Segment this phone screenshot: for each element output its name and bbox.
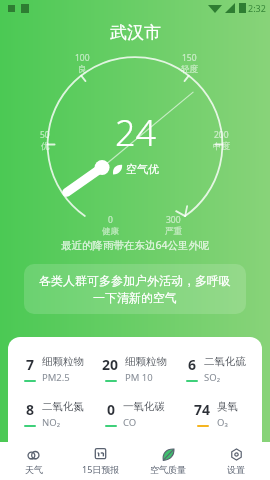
staticText: 50 bbox=[40, 129, 50, 141]
button[interactable]: 6 bbox=[175, 355, 256, 384]
staticText: O₃ bbox=[217, 416, 228, 429]
staticText: 轻度 bbox=[181, 64, 198, 75]
staticText: 2:32 bbox=[248, 2, 266, 14]
staticText: 二氧化氮 bbox=[42, 400, 84, 413]
staticText: 一氧化碳 bbox=[123, 400, 165, 413]
staticText: 各类人群可多参加户外活动，多呼吸一下清新的空气 bbox=[38, 273, 232, 305]
staticText: CO bbox=[123, 416, 137, 429]
staticText: 天气 bbox=[25, 464, 43, 475]
button[interactable]: 设置 bbox=[202, 442, 270, 480]
button[interactable]: 0 bbox=[94, 400, 175, 429]
staticText: 空气优 bbox=[126, 162, 159, 176]
staticText: 健康 bbox=[102, 226, 119, 237]
staticText: 74 bbox=[194, 400, 211, 419]
staticText: 150 bbox=[182, 52, 197, 64]
staticText: 15日预报 bbox=[82, 463, 120, 475]
staticText: 设置 bbox=[227, 464, 245, 475]
staticText: 良 bbox=[78, 64, 87, 75]
staticText: 24 bbox=[115, 108, 157, 157]
staticText: 中度 bbox=[213, 141, 230, 152]
staticText: 7 bbox=[26, 355, 35, 374]
staticText: 300 bbox=[166, 214, 181, 226]
staticText: 最近的降雨带在东边64公里外呢 bbox=[61, 238, 210, 252]
staticText: 8 bbox=[26, 400, 35, 419]
button[interactable]: 74 bbox=[175, 400, 256, 429]
staticText: PM 10 bbox=[125, 371, 153, 384]
button[interactable]: 空气质量 bbox=[134, 442, 202, 480]
button[interactable]: 天气 bbox=[0, 442, 67, 480]
staticText: PM2.5 bbox=[42, 371, 70, 384]
staticText: 细颗粒物 bbox=[42, 355, 84, 368]
button[interactable]: 各类人群可多参加户外活动，多呼吸一下清新的空气 bbox=[24, 264, 246, 314]
staticText: 200 bbox=[214, 129, 229, 141]
staticText: 20 bbox=[102, 355, 119, 374]
staticText: 优 bbox=[41, 141, 50, 152]
staticText: 严重 bbox=[165, 226, 182, 237]
staticText: 二氧化硫 bbox=[204, 355, 246, 368]
staticText: 0 bbox=[107, 400, 116, 419]
button[interactable]: 7 bbox=[14, 355, 94, 384]
staticText: SO₂ bbox=[204, 371, 220, 384]
staticText: NO₂ bbox=[42, 416, 60, 429]
staticText: 0 bbox=[108, 214, 113, 226]
button[interactable]: 8 bbox=[14, 400, 94, 429]
staticText: 6 bbox=[188, 355, 197, 374]
button[interactable]: 15日预报 bbox=[67, 442, 134, 480]
staticText: 100 bbox=[75, 52, 90, 64]
staticText: 空气质量 bbox=[150, 464, 186, 475]
staticText: 武汉市 bbox=[110, 22, 161, 43]
staticText: 细颗粒物 bbox=[125, 355, 167, 368]
staticText: 臭氧 bbox=[217, 400, 238, 413]
button[interactable]: 20 bbox=[94, 355, 175, 384]
